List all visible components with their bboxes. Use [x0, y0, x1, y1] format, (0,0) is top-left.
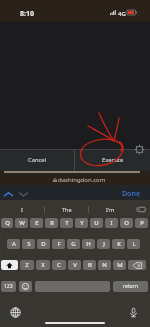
staticText: G — [71, 240, 76, 248]
button[interactable]: O — [120, 218, 133, 228]
button[interactable]: W — [15, 218, 28, 228]
staticText: Done — [122, 189, 141, 199]
button[interactable]: T — [60, 218, 73, 228]
staticText: 4G — [118, 10, 126, 18]
staticText: X — [41, 261, 45, 269]
button[interactable]: V — [68, 260, 81, 270]
button[interactable]: Change keyboard — [10, 307, 21, 318]
button[interactable]: K — [112, 239, 125, 249]
staticText: D — [41, 240, 46, 248]
staticText: Z — [25, 261, 29, 269]
button[interactable]: X — [36, 260, 50, 270]
button[interactable]: I — [0, 200, 44, 218]
staticText: N — [102, 261, 107, 269]
button[interactable]: Settings — [134, 144, 145, 155]
button[interactable]: G — [67, 239, 80, 249]
staticText: I — [110, 219, 113, 227]
staticText: W — [19, 219, 25, 227]
staticText: 8:10 — [20, 9, 34, 19]
staticText: Execute — [102, 156, 124, 164]
button[interactable]: Z — [20, 260, 34, 270]
staticText: C — [57, 261, 61, 269]
button[interactable]: Dictation — [128, 307, 139, 318]
button[interactable]: U — [90, 218, 103, 228]
staticText: K — [117, 240, 121, 248]
button[interactable]: S — [22, 239, 35, 249]
button[interactable]: D — [37, 239, 50, 249]
button[interactable]: Y — [75, 218, 88, 228]
staticText: V — [73, 261, 77, 269]
staticText: L — [132, 240, 136, 248]
staticText: M — [117, 261, 123, 269]
button[interactable]: P — [135, 218, 148, 228]
staticText: F — [57, 240, 61, 248]
staticText: R — [50, 219, 54, 227]
button[interactable]: B — [83, 260, 96, 270]
button[interactable]: return — [113, 281, 148, 292]
button[interactable]: The — [45, 200, 88, 218]
button[interactable]: Shift — [1, 260, 18, 270]
staticText: dashingdon.com — [58, 176, 106, 184]
button[interactable]: J — [97, 239, 110, 249]
button[interactable]: F — [52, 239, 65, 249]
button[interactable]: Emoji — [19, 281, 32, 292]
button[interactable]: Q — [1, 218, 13, 228]
button[interactable]: C — [52, 260, 66, 270]
button[interactable]: Clipboard — [132, 200, 150, 218]
button[interactable]: Execute — [75, 149, 150, 171]
button[interactable]: E — [30, 218, 43, 228]
button[interactable]: H — [82, 239, 95, 249]
button[interactable]: Cancel — [0, 149, 74, 171]
staticText: U — [94, 219, 99, 227]
staticText: return — [123, 283, 138, 290]
staticText: I'm — [106, 206, 115, 213]
staticText: I — [21, 206, 23, 213]
staticText: The — [62, 206, 72, 213]
staticText: H — [86, 240, 91, 248]
button[interactable]: R — [45, 218, 58, 228]
staticText: J — [103, 240, 105, 248]
button[interactable]: M — [113, 260, 126, 270]
button[interactable]: Previous field — [3, 189, 14, 200]
button[interactable]: 123 — [1, 281, 16, 292]
button[interactable]: L — [127, 239, 140, 249]
button[interactable]: Backspace — [128, 260, 146, 270]
button[interactable]: Next field — [18, 189, 29, 200]
button[interactable]: I'm — [89, 200, 132, 218]
staticText: B — [88, 261, 92, 269]
button[interactable]: N — [98, 260, 111, 270]
staticText: Y — [80, 219, 84, 227]
staticText: A — [12, 240, 16, 248]
button[interactable]: A — [7, 239, 20, 249]
button[interactable]: I — [105, 218, 118, 228]
staticText: S — [27, 240, 31, 248]
staticText: Q — [5, 219, 10, 227]
staticText: E — [35, 219, 39, 227]
staticText: 123 — [4, 283, 13, 290]
staticText: O — [124, 219, 129, 227]
staticText: P — [140, 219, 144, 227]
button[interactable]: Done — [122, 189, 141, 199]
staticText: Cancel — [28, 156, 47, 164]
staticText: T — [65, 219, 69, 227]
